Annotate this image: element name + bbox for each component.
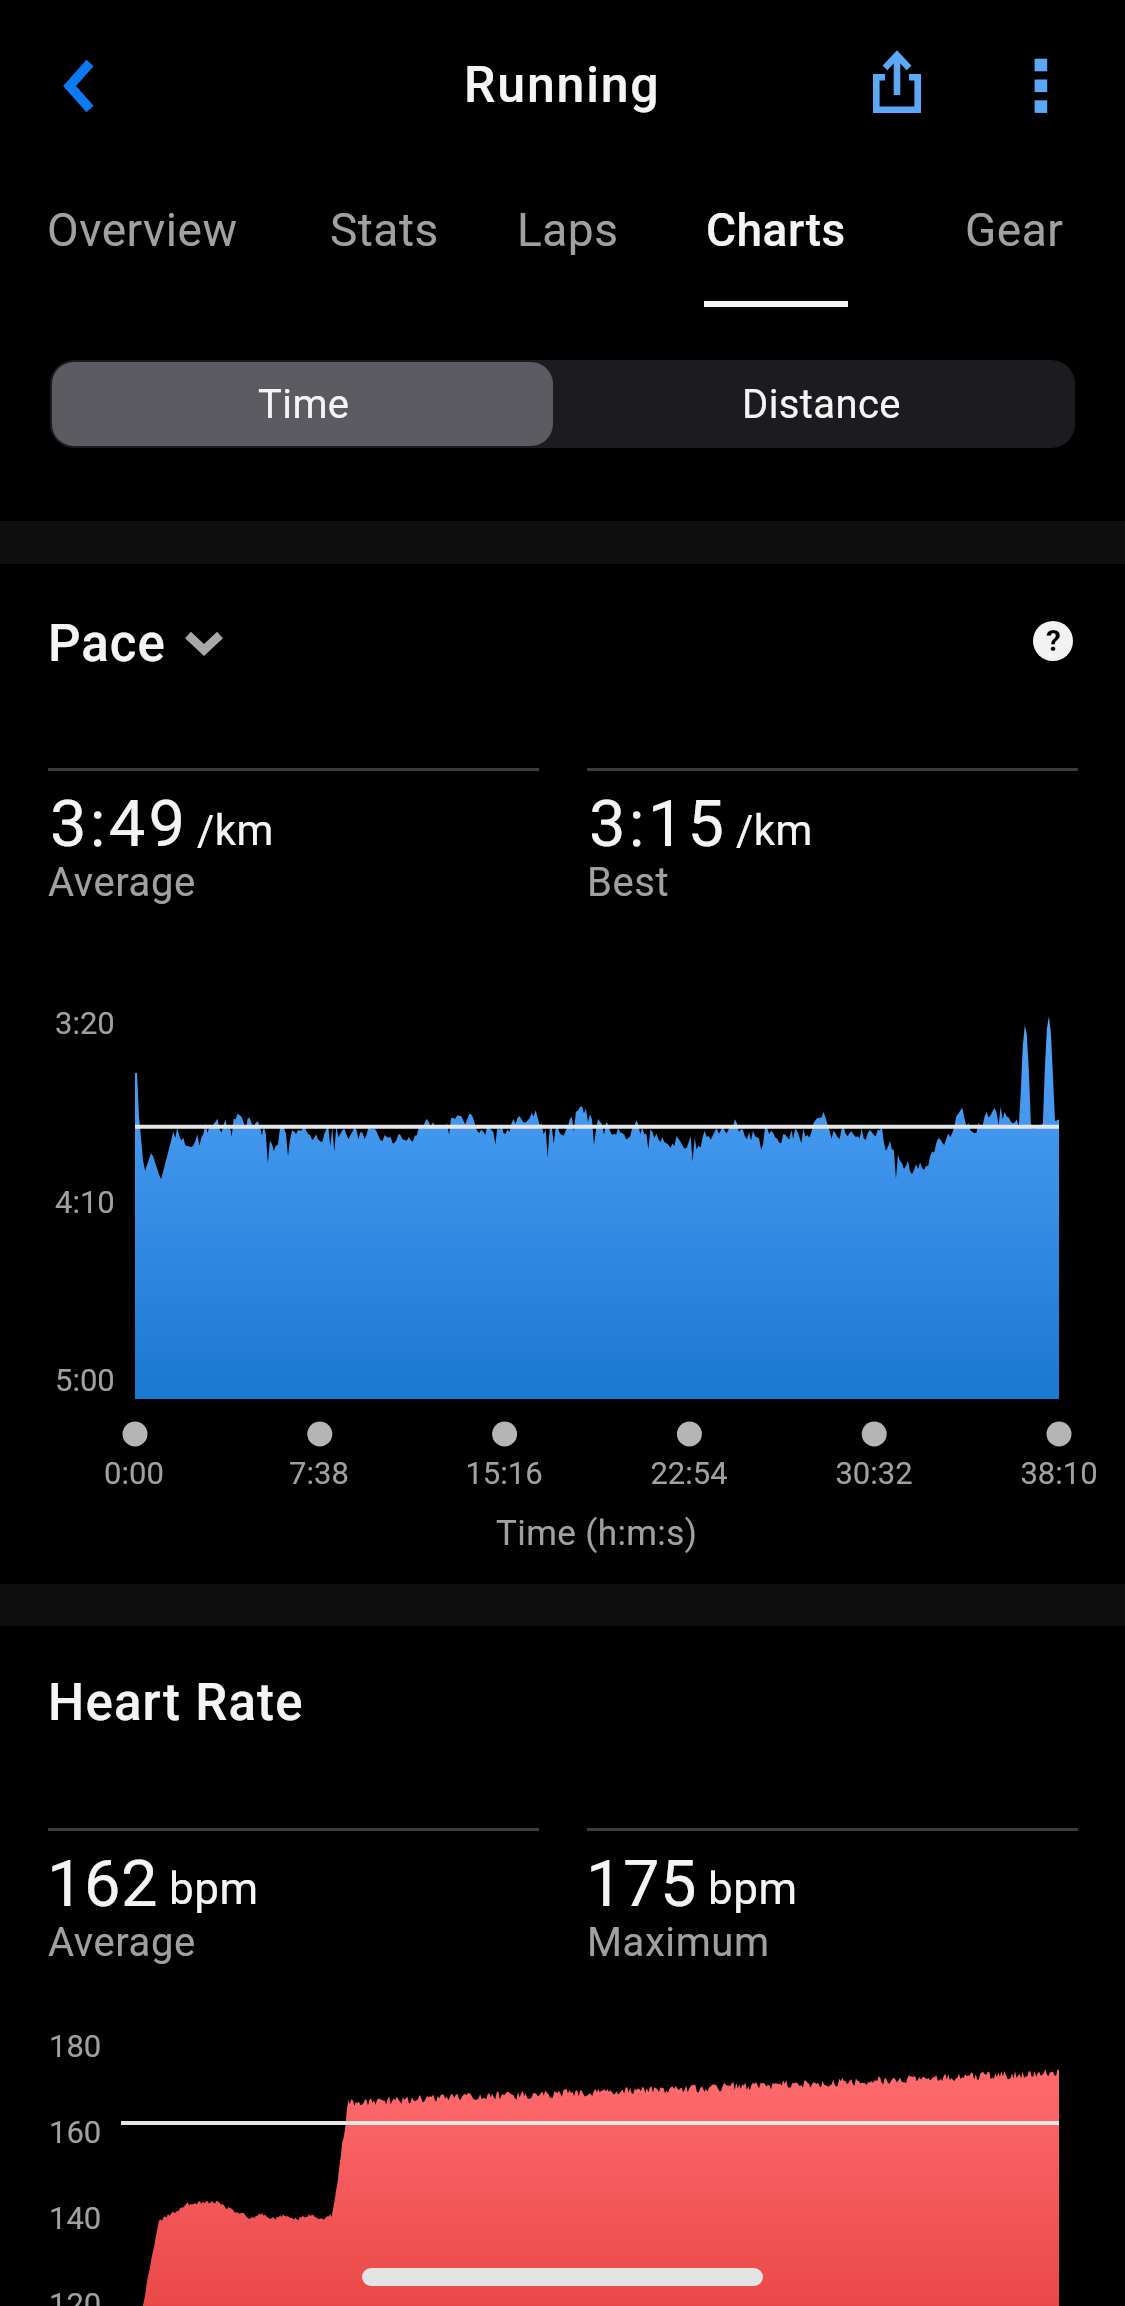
staticText: /km bbox=[736, 806, 813, 855]
staticText: ? bbox=[1046, 623, 1061, 658]
staticText: Overview bbox=[47, 203, 238, 257]
staticText: 140 bbox=[49, 2200, 102, 2236]
staticText: /km bbox=[197, 806, 274, 855]
staticText: bpm bbox=[708, 1863, 798, 1915]
staticText: 3:49 bbox=[50, 786, 189, 862]
staticText: Average bbox=[48, 859, 196, 906]
staticText: 15:16 bbox=[424, 1455, 584, 1491]
button[interactable]: Share bbox=[843, 30, 951, 138]
staticText: Maximum bbox=[587, 1919, 770, 1966]
staticText: 0:00 bbox=[54, 1455, 214, 1491]
staticText: 175 bbox=[586, 1846, 698, 1922]
button[interactable]: Overview bbox=[22, 170, 262, 320]
staticText: 5:00 bbox=[55, 1362, 115, 1398]
staticText: 4:10 bbox=[55, 1184, 115, 1220]
staticText: bpm bbox=[169, 1863, 259, 1915]
staticText: 3:20 bbox=[55, 1005, 115, 1041]
button[interactable]: Time bbox=[52, 362, 553, 446]
button[interactable]: Pace bbox=[40, 600, 235, 680]
staticText: Charts bbox=[706, 203, 846, 257]
staticText: Time (h:m:s) bbox=[496, 1513, 698, 1554]
staticText: 120 bbox=[49, 2286, 102, 2306]
staticText: 180 bbox=[49, 2028, 102, 2064]
staticText: 162 bbox=[47, 1846, 159, 1922]
staticText: 3:15 bbox=[589, 786, 728, 862]
button[interactable]: Back bbox=[28, 32, 134, 138]
staticText: Distance bbox=[742, 381, 901, 428]
button[interactable]: Charts bbox=[684, 170, 868, 320]
staticText: 30:32 bbox=[794, 1455, 954, 1491]
button[interactable]: Distance bbox=[555, 360, 1075, 448]
button[interactable]: Stats bbox=[294, 170, 474, 320]
staticText: Pace bbox=[48, 614, 166, 674]
button[interactable]: Laps bbox=[488, 170, 648, 320]
staticText: 38:10 bbox=[979, 1455, 1125, 1491]
staticText: Best bbox=[587, 859, 670, 906]
staticText: Running bbox=[464, 56, 661, 115]
staticText: Time bbox=[258, 381, 350, 428]
staticText: Gear bbox=[965, 203, 1064, 257]
staticText: 22:54 bbox=[609, 1455, 769, 1491]
button[interactable]: More options bbox=[988, 32, 1094, 138]
staticText: Average bbox=[48, 1919, 196, 1966]
staticText: 160 bbox=[49, 2114, 102, 2150]
staticText: Heart Rate bbox=[48, 1673, 304, 1733]
button[interactable]: Help bbox=[1033, 621, 1073, 661]
staticText: Stats bbox=[330, 203, 439, 257]
staticText: 7:38 bbox=[239, 1455, 399, 1491]
staticText: Laps bbox=[517, 203, 619, 257]
button[interactable]: Gear bbox=[929, 170, 1099, 320]
